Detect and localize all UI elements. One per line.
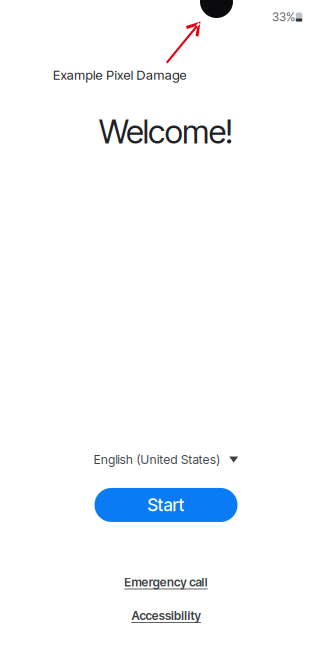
- button[interactable]: Start: [94, 488, 237, 522]
- staticText: Example Pixel Damage: [53, 67, 187, 83]
- staticText: Emergency call: [124, 575, 208, 589]
- staticText: 33%: [272, 10, 295, 24]
- staticText: Start: [147, 494, 184, 515]
- staticText: Welcome!: [99, 112, 233, 151]
- button[interactable]: English (United States): [82, 447, 250, 472]
- button[interactable]: Accessibility: [119, 604, 213, 627]
- button[interactable]: Emergency call: [112, 571, 220, 593]
- staticText: English (United States): [94, 452, 220, 467]
- staticText: Accessibility: [131, 608, 201, 623]
